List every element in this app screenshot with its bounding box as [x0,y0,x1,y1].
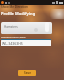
staticText: Show Me Direction [1,5,28,9]
staticText: Hamsters [4,25,18,29]
staticText: Profile Modifying [1,11,36,16]
button[interactable]: WL-34363HS [1,40,51,46]
staticText: Save [24,71,31,75]
staticText: WL-34363HS [2,41,23,46]
staticText: Interface Card Name [1,35,26,38]
button[interactable]: Hamsters [1,22,52,34]
button[interactable]: Save [18,70,36,76]
